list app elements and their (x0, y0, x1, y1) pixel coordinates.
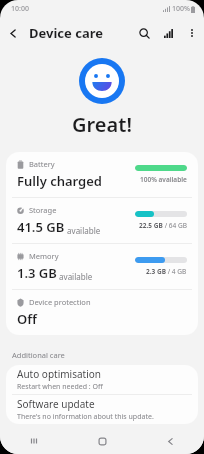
staticText: Memory (29, 251, 59, 261)
button[interactable]: Device protection (6, 290, 198, 335)
staticText: Off (17, 310, 37, 328)
staticText: Device care (29, 24, 103, 42)
staticText: 22.5 GB (139, 221, 163, 230)
staticText: Fully charged (17, 172, 102, 190)
staticText: available (57, 271, 93, 282)
staticText: Great! (72, 111, 132, 138)
button[interactable]: Memory (6, 244, 198, 289)
button[interactable]: Back (136, 428, 204, 454)
button[interactable]: Storage (6, 198, 198, 243)
staticText: / 4 GB (166, 267, 187, 276)
staticText: Restart when needed : Off (17, 382, 103, 392)
staticText: 1.3 GB (17, 264, 57, 282)
staticText: Auto optimisation (17, 367, 101, 381)
button[interactable]: Back (0, 20, 26, 46)
staticText: 100% available (140, 175, 187, 184)
staticText: / 64 GB (163, 221, 187, 230)
button[interactable]: Software update (6, 395, 198, 424)
button[interactable]: More options (180, 21, 204, 45)
staticText: 2.3 GB (146, 267, 166, 276)
staticText: Additional care (12, 350, 65, 360)
button[interactable]: Auto optimisation (6, 365, 198, 394)
staticText: available (65, 225, 101, 236)
staticText: There's no information about this update… (17, 412, 154, 422)
button[interactable]: Battery (6, 152, 198, 197)
button[interactable]: Recents (0, 428, 68, 454)
button[interactable]: Usage statistics (156, 21, 180, 45)
staticText: Battery (29, 159, 55, 169)
staticText: 10:00 (11, 4, 29, 14)
staticText: Storage (29, 205, 57, 215)
staticText: 41.5 GB (17, 218, 65, 236)
button[interactable]: Search (132, 21, 156, 45)
staticText: Software update (17, 397, 95, 411)
button[interactable]: Home (68, 428, 136, 454)
staticText: 100% (172, 4, 190, 14)
staticText: Device protection (29, 297, 91, 307)
